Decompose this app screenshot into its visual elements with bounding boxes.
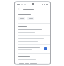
button[interactable]: Back bbox=[17, 7, 21, 11]
button[interactable] bbox=[18, 29, 47, 30]
button[interactable] bbox=[17, 63, 48, 64]
button[interactable]: Toggle option bbox=[18, 47, 47, 50]
button[interactable]: Toggle option bbox=[44, 47, 47, 50]
button[interactable] bbox=[18, 17, 25, 20]
button[interactable] bbox=[27, 17, 34, 20]
